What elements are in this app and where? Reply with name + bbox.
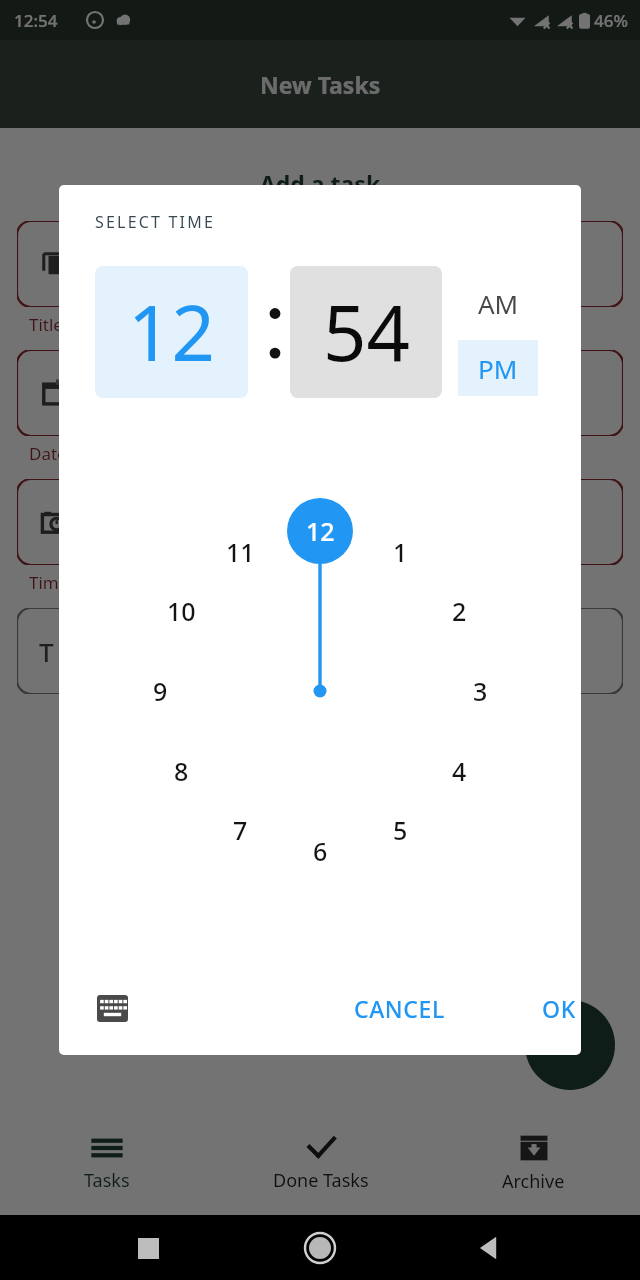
staticText: Archive [502,1169,565,1194]
button[interactable]: 6 [294,825,346,877]
button[interactable]: Back [468,1226,512,1270]
button[interactable]: 11 [214,526,266,578]
staticText: Date [29,442,67,465]
button[interactable]: Home [296,1224,344,1272]
button[interactable]: OK [523,981,581,1035]
button[interactable]: 10 [155,585,207,637]
button[interactable]: 7 [214,804,266,856]
staticText: CANCEL [354,993,445,1024]
button[interactable] [17,221,623,307]
staticText: 12:54 [14,9,58,32]
staticText: New Tasks [260,69,381,100]
staticText: 12 [306,514,335,548]
button[interactable]: 9 [134,665,186,717]
staticText: 12 [128,280,215,384]
staticText: AM [478,286,519,321]
button[interactable]: Switch to text input [89,985,135,1031]
staticText: Time [29,571,69,594]
staticText: SELECT TIME [95,211,216,233]
button[interactable]: Add task [525,1000,615,1090]
staticText: 46% [594,9,628,32]
button[interactable]: 8 [155,745,207,797]
staticText: OK [542,993,576,1024]
staticText: 8 [174,754,189,788]
staticText: Title [29,313,63,336]
staticText: 2 [452,594,467,628]
staticText: 11 [226,535,255,569]
staticText: Tasks [84,1168,130,1193]
button[interactable] [17,479,623,565]
staticText: 10 [167,594,196,628]
button[interactable]: 1 [374,526,426,578]
staticText: 54 [323,280,410,384]
staticText: Add a task [0,168,640,199]
staticText: 5 [393,813,408,847]
button[interactable]: T [17,608,623,694]
staticText: Done Tasks [273,1168,369,1193]
staticText: 9 [153,674,168,708]
button[interactable]: 12 [95,266,248,398]
button[interactable]: 54 [290,266,442,398]
staticText: 1 [393,535,408,569]
button[interactable]: 12 [294,505,346,557]
staticText: 4 [452,754,467,788]
staticText: 3 [473,674,488,708]
staticText: 7 [233,813,248,847]
button[interactable]: CANCEL [335,981,463,1035]
button[interactable]: 5 [374,804,426,856]
button[interactable]: PM [458,340,538,396]
button[interactable] [17,350,623,436]
button[interactable]: Tasks [0,1135,214,1193]
staticText: PM [478,351,518,386]
staticText: T [39,634,54,669]
button[interactable]: Archive [427,1134,640,1194]
button[interactable]: 3 [454,665,506,717]
button[interactable]: Recent apps [128,1228,168,1268]
button[interactable]: 4 [433,745,485,797]
staticText: 6 [313,834,328,868]
button[interactable]: AM [458,279,538,327]
button[interactable]: 2 [433,585,485,637]
button[interactable]: Done Tasks [214,1135,427,1193]
